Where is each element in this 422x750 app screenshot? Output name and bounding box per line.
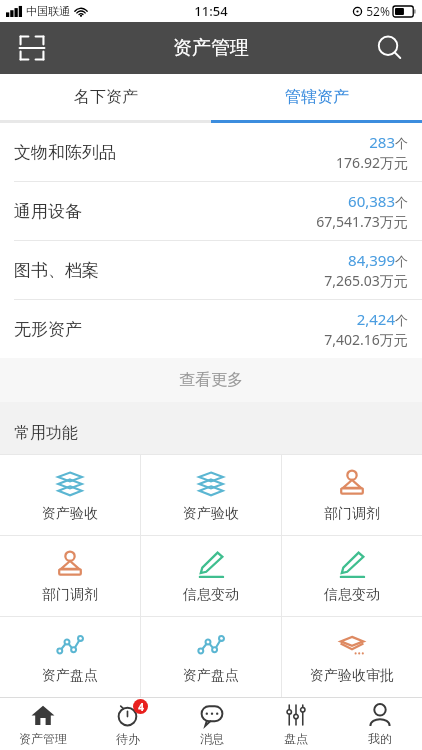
staticText: 消息 bbox=[200, 731, 224, 746]
staticText: 我的 bbox=[368, 731, 392, 746]
button[interactable]: 资产验收审批 bbox=[282, 617, 422, 697]
staticText: 无形资产 bbox=[14, 319, 82, 340]
staticText: 67,541.73万元 bbox=[316, 212, 408, 231]
button[interactable]: 4 bbox=[85, 698, 170, 750]
staticText: 部门调剂 bbox=[42, 586, 98, 604]
staticText: 文物和陈列品 bbox=[14, 142, 116, 163]
staticText: 常用功能 bbox=[14, 423, 78, 443]
button[interactable]: Search bbox=[368, 26, 412, 70]
staticText: 管辖资产 bbox=[285, 87, 349, 107]
staticText: 通用设备 bbox=[14, 201, 82, 222]
staticText: 资产验收 bbox=[183, 505, 239, 523]
button[interactable]: 资产验收 bbox=[0, 455, 140, 535]
button[interactable]: 信息变动 bbox=[141, 536, 281, 616]
button[interactable]: 无形资产 bbox=[0, 300, 422, 358]
staticText: 盘点 bbox=[284, 731, 308, 746]
staticText: 60,383个 bbox=[348, 191, 408, 211]
button[interactable]: 通用设备 bbox=[0, 182, 422, 240]
staticText: 84,399个 bbox=[348, 250, 408, 270]
button[interactable]: 资产盘点 bbox=[141, 617, 281, 697]
button[interactable]: 消息 bbox=[170, 698, 254, 750]
button[interactable]: 资产管理 bbox=[0, 698, 85, 750]
staticText: 中国联通 bbox=[26, 4, 70, 18]
button[interactable]: 文物和陈列品 bbox=[0, 123, 422, 181]
button[interactable]: 信息变动 bbox=[282, 536, 422, 616]
staticText: 283个 bbox=[369, 132, 408, 152]
staticText: 资产验收审批 bbox=[310, 667, 394, 685]
staticText: 52% bbox=[366, 3, 390, 19]
button[interactable]: 管辖资产 bbox=[211, 74, 422, 120]
button[interactable]: 部门调剂 bbox=[282, 455, 422, 535]
staticText: 资产管理 bbox=[173, 36, 249, 60]
staticText: 名下资产 bbox=[74, 87, 138, 107]
staticText: 信息变动 bbox=[324, 586, 380, 604]
staticText: 部门调剂 bbox=[324, 505, 380, 523]
staticText: 待办 bbox=[116, 731, 140, 746]
button[interactable]: 我的 bbox=[338, 698, 422, 750]
button[interactable]: 资产验收 bbox=[141, 455, 281, 535]
staticText: 资产验收 bbox=[42, 505, 98, 523]
staticText: 资产管理 bbox=[19, 731, 67, 746]
button[interactable]: 部门调剂 bbox=[0, 536, 140, 616]
staticText: 资产盘点 bbox=[183, 667, 239, 685]
staticText: 176.92万元 bbox=[336, 153, 408, 172]
staticText: 查看更多 bbox=[179, 370, 243, 390]
staticText: 资产盘点 bbox=[42, 667, 98, 685]
button[interactable]: 名下资产 bbox=[0, 74, 211, 120]
button[interactable]: 查看更多 bbox=[0, 358, 422, 402]
button[interactable]: 盘点 bbox=[254, 698, 338, 750]
staticText: 11:54 bbox=[194, 2, 228, 20]
staticText: 7,265.03万元 bbox=[324, 271, 408, 290]
button[interactable]: 图书、档案 bbox=[0, 241, 422, 299]
staticText: 4 bbox=[138, 700, 144, 714]
staticText: 信息变动 bbox=[183, 586, 239, 604]
staticText: 2,424个 bbox=[356, 309, 408, 329]
button[interactable]: Scan bbox=[12, 28, 52, 68]
button[interactable]: 资产盘点 bbox=[0, 617, 140, 697]
staticText: 7,402.16万元 bbox=[324, 330, 408, 349]
staticText: 图书、档案 bbox=[14, 260, 99, 281]
